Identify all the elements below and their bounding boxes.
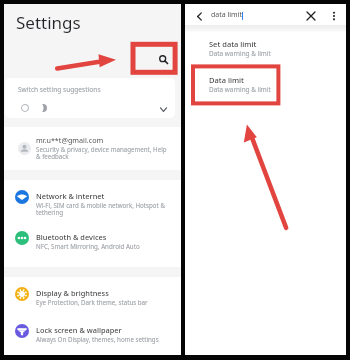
button[interactable]: Lock screen & wallpaper bbox=[4, 314, 181, 352]
staticText: Wi-Fi, SIM card & mobile network, Hotspo… bbox=[36, 201, 165, 217]
button[interactable]: Search bbox=[149, 45, 177, 73]
staticText: Switch setting suggestions bbox=[18, 85, 101, 94]
staticText: Network & internet bbox=[36, 191, 105, 201]
staticText: Bluetooth & devices bbox=[36, 232, 107, 242]
staticText: Always On Display, themes, home settings bbox=[36, 335, 159, 343]
button[interactable]: Display & brightness bbox=[4, 277, 181, 315]
staticText: Data warning & limit bbox=[209, 85, 271, 94]
button[interactable]: Network & internet bbox=[4, 180, 181, 218]
button[interactable]: Set data limit bbox=[185, 34, 346, 70]
staticText: Data warning & limit bbox=[209, 49, 271, 58]
staticText: Set data limit bbox=[209, 39, 257, 49]
staticText: mr.u**t@gmail.com bbox=[36, 135, 104, 145]
staticText: NFC, Smart Mirroring, Android Auto bbox=[36, 242, 140, 250]
staticText: Security & privacy, device management, H… bbox=[36, 145, 167, 161]
staticText: Eye Protection, Dark theme, status bar bbox=[36, 298, 148, 306]
button[interactable]: Switch setting suggestions bbox=[5, 78, 175, 118]
button[interactable]: Back bbox=[190, 7, 208, 25]
button[interactable]: mr.u**t@gmail.com bbox=[4, 127, 181, 170]
button[interactable]: More options bbox=[325, 7, 343, 25]
button[interactable]: Clear search bbox=[301, 6, 321, 26]
staticText: Settings bbox=[16, 11, 81, 34]
button[interactable]: Bluetooth & devices bbox=[4, 221, 181, 259]
button[interactable]: Data limit bbox=[185, 70, 346, 106]
staticText: data limit bbox=[211, 10, 242, 20]
staticText: Data limit bbox=[209, 75, 244, 85]
staticText: Lock screen & wallpaper bbox=[36, 325, 122, 335]
staticText: Display & brightness bbox=[36, 288, 109, 298]
